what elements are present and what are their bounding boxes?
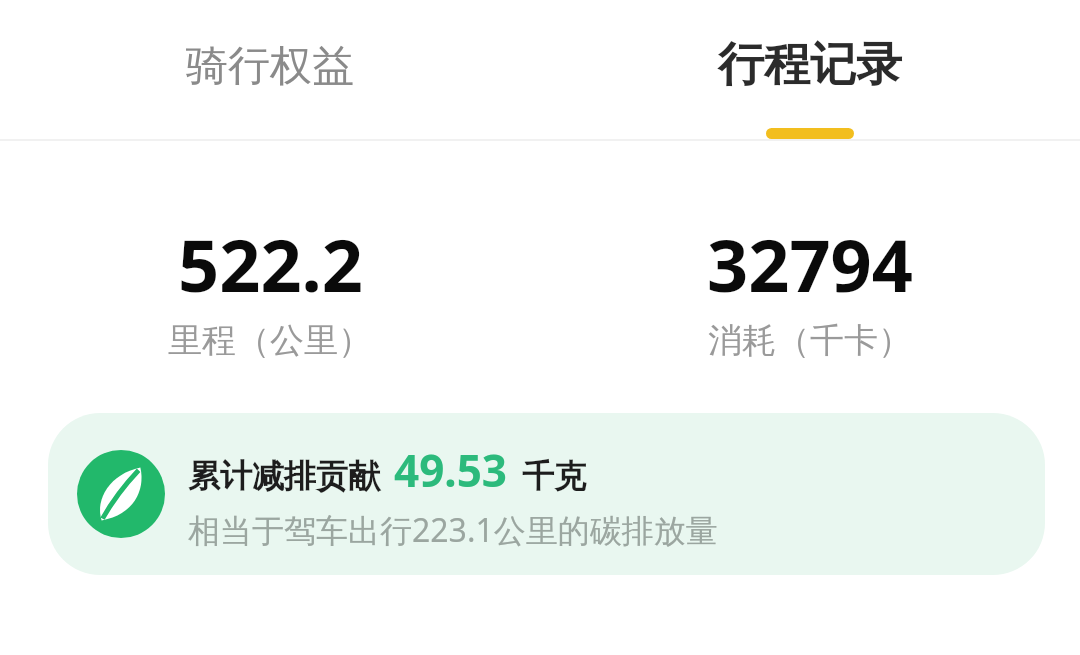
button[interactable]: 522.2 [0,215,540,362]
staticText: 522.2 [178,215,363,313]
staticText: 32794 [707,215,913,313]
staticText: 里程（公里） [168,319,372,362]
staticText: 相当于驾车出行223.1公里的碳排放量 [188,508,718,552]
staticText: 行程记录 [718,36,902,94]
button[interactable]: 骑行权益 [0,0,540,140]
button[interactable]: 32794 [540,215,1080,362]
button[interactable]: Carbon saving [48,413,1045,575]
other: Carbon saving [77,450,165,538]
staticText: 千克 [522,456,586,496]
staticText: 骑行权益 [186,40,354,93]
button[interactable]: 行程记录 [540,0,1080,140]
staticText: 消耗（千卡） [708,319,912,362]
staticText: 49.53 [394,440,508,500]
staticText: 累计减排贡献 [188,456,380,496]
